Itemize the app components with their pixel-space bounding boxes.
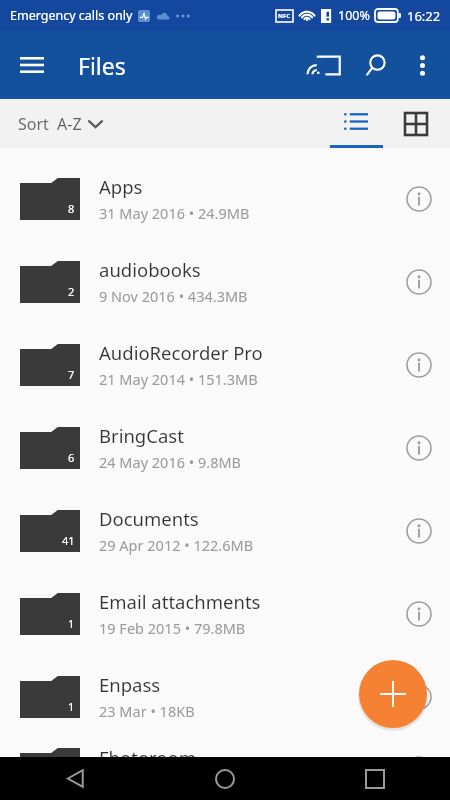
button[interactable]: 8 <box>0 157 450 240</box>
staticText: NFC <box>278 12 291 20</box>
staticText: Files <box>78 50 126 81</box>
button[interactable]: Home <box>150 757 300 800</box>
staticText: 31 May 2016 • 24.9MB <box>99 203 250 223</box>
button[interactable]: 7 <box>0 323 450 406</box>
staticText: 16:22 <box>407 7 441 25</box>
staticText: Enpass <box>99 672 161 697</box>
staticText: 41 <box>62 533 75 548</box>
button[interactable]: 3 <box>0 738 450 800</box>
button[interactable]: Search <box>352 41 400 89</box>
button[interactable]: Open navigation menu <box>8 41 56 89</box>
button[interactable]: Info about AudioRecorder Pro <box>392 338 446 392</box>
staticText: 7 <box>68 367 75 382</box>
button[interactable]: Info about audiobooks <box>392 255 446 309</box>
staticText: 100% <box>338 7 370 24</box>
button[interactable]: Info about Enpass <box>392 670 446 724</box>
staticText: 1 <box>68 699 75 714</box>
staticText: 12 Jan 2016 • 2.1MB <box>99 774 234 794</box>
staticText: 24 May 2016 • 9.8MB <box>99 452 242 472</box>
staticText: 21 May 2014 • 151.3MB <box>99 369 258 389</box>
button[interactable]: Info about Apps <box>392 172 446 226</box>
staticText: Sort <box>18 113 49 135</box>
staticText: audiobooks <box>99 257 201 282</box>
staticText: 23 Mar • 18KB <box>99 701 195 721</box>
button[interactable]: Info about Fhotoroom <box>392 742 446 796</box>
button[interactable]: More options <box>400 43 444 87</box>
button[interactable]: List view <box>328 99 384 148</box>
staticText: A-Z <box>57 113 82 135</box>
staticText: BringCast <box>99 423 184 448</box>
button[interactable]: 6 <box>0 406 450 489</box>
staticText: 29 Apr 2012 • 122.6MB <box>99 535 254 555</box>
button[interactable]: 1 <box>0 572 450 655</box>
staticText: AudioRecorder Pro <box>99 340 263 365</box>
button[interactable]: Info about Documents <box>392 504 446 558</box>
staticText: Fhotoroom <box>99 745 197 770</box>
staticText: Email attachments <box>99 589 261 614</box>
staticText: 9 Nov 2016 • 434.3MB <box>99 286 248 306</box>
button[interactable]: Info about Email attachments <box>392 587 446 641</box>
staticText: 6 <box>68 450 75 465</box>
staticText: Emergency calls only <box>10 7 133 24</box>
staticText: 8 <box>68 201 75 216</box>
button[interactable]: 1 <box>0 655 450 738</box>
staticText: 1 <box>68 616 75 631</box>
button[interactable]: Recent apps <box>300 757 450 800</box>
button[interactable]: Sort <box>18 113 102 135</box>
staticText: 19 Feb 2015 • 79.8MB <box>99 618 246 638</box>
button[interactable]: Info about BringCast <box>392 421 446 475</box>
staticText: 3 <box>68 771 75 786</box>
button[interactable]: Back <box>0 757 150 800</box>
staticText: Apps <box>99 174 143 199</box>
button[interactable]: 41 <box>0 489 450 572</box>
staticText: 2 <box>68 284 75 299</box>
button[interactable]: Cast <box>304 41 352 89</box>
button[interactable]: Add <box>359 660 427 728</box>
staticText: Documents <box>99 506 199 531</box>
button[interactable]: Grid view <box>390 99 442 148</box>
button[interactable]: 2 <box>0 240 450 323</box>
